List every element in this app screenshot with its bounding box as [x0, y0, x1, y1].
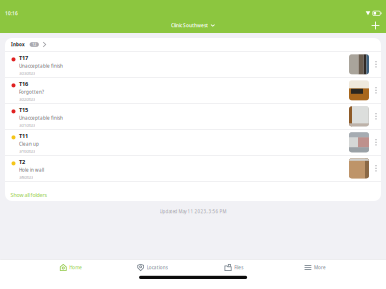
staticText: Locations	[147, 264, 168, 271]
staticText: T17	[19, 54, 28, 62]
staticText: 12	[32, 42, 36, 47]
staticText: 3/21/2023	[19, 123, 35, 128]
button[interactable]: Locations	[137, 259, 168, 275]
staticText: 3/8/2023	[19, 175, 33, 180]
button[interactable]: Show all folders	[5, 182, 381, 201]
button[interactable]: Home	[60, 259, 82, 275]
staticText: T15	[19, 106, 28, 114]
staticText: Unacceptable finish	[19, 63, 63, 69]
button[interactable]: Inbox	[5, 38, 381, 51]
button[interactable]: T16	[5, 78, 381, 103]
staticText: T11	[19, 132, 28, 140]
staticText: 10:16	[5, 10, 18, 16]
button[interactable]: Add	[366, 16, 385, 35]
staticText: More	[314, 264, 326, 271]
staticText: T16	[19, 80, 28, 88]
button[interactable]: Files	[224, 259, 243, 275]
staticText: 3/22/2023	[19, 97, 35, 102]
button[interactable]: T17	[5, 52, 381, 77]
staticText: 3/10/2023	[19, 149, 35, 154]
staticText: Files	[234, 264, 243, 271]
button[interactable]: T2	[5, 156, 381, 181]
staticText: Updated May 11 2023, 3:56 PM	[159, 208, 226, 214]
staticText: T2	[19, 158, 25, 166]
staticText: Hole in wall	[19, 167, 44, 173]
staticText: Inbox	[11, 41, 25, 48]
staticText: Show all folders	[11, 191, 47, 199]
button[interactable]: More	[304, 259, 326, 275]
staticText: Clean up	[19, 141, 39, 147]
staticText: 3/23/2023	[19, 71, 35, 76]
staticText: Home	[69, 264, 82, 271]
button[interactable]: Clinic Southwest	[166, 19, 220, 32]
button[interactable]: T15	[5, 104, 381, 129]
staticText: Unacceptable finish	[19, 115, 63, 121]
staticText: Forgotten?	[19, 89, 44, 95]
button[interactable]: T11	[5, 130, 381, 155]
staticText: Clinic Southwest	[171, 22, 208, 29]
